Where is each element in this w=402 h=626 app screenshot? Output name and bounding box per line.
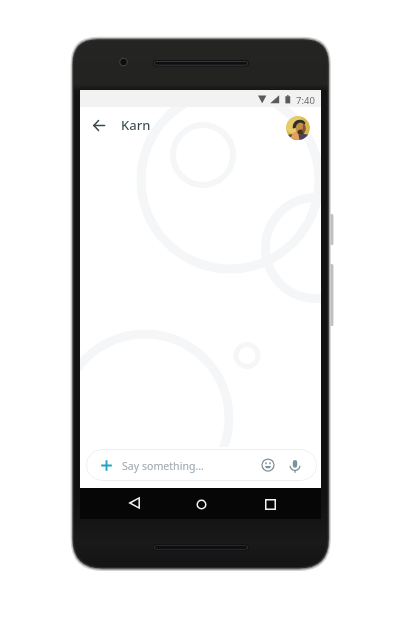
button[interactable]: Add attachment [95, 454, 117, 476]
staticText: Say something... [122, 459, 204, 473]
button[interactable]: Profile [286, 116, 310, 140]
button[interactable]: Voice input [284, 455, 306, 477]
button[interactable]: Back [122, 491, 146, 515]
button[interactable]: Emoji [257, 454, 279, 476]
staticText: Karn [121, 116, 151, 134]
button[interactable]: Home [189, 492, 213, 516]
button[interactable]: Add attachment [86, 449, 317, 481]
button[interactable]: Recent apps [258, 492, 282, 516]
staticText: 7:40 [296, 94, 315, 107]
button[interactable]: Back [87, 113, 111, 137]
